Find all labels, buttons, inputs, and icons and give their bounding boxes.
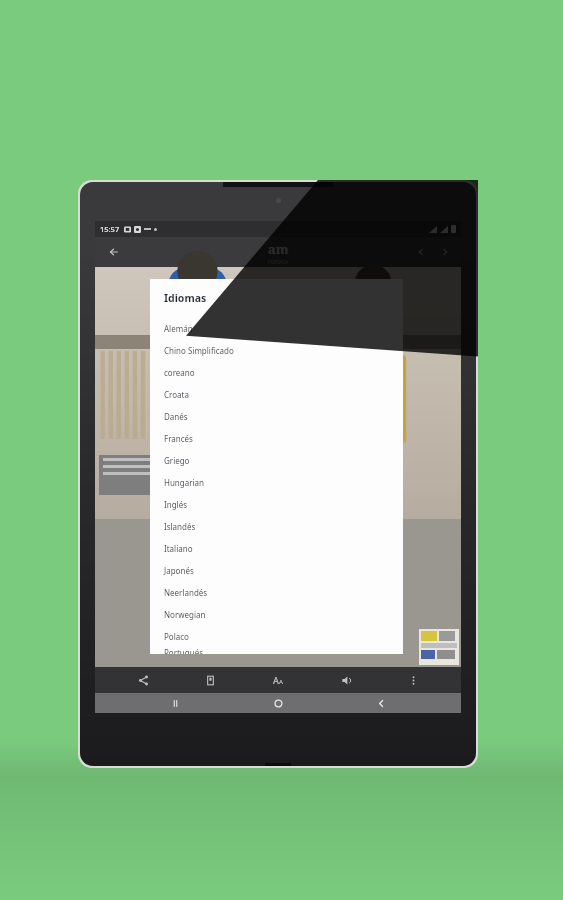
button[interactable]: Neerlandés xyxy=(150,581,403,603)
staticText: Polaco xyxy=(164,631,189,642)
button[interactable]: Recientes xyxy=(152,693,198,713)
staticText: Hungarian xyxy=(164,477,205,488)
button[interactable]: Tamaño de texto xyxy=(258,667,298,693)
button[interactable]: Danés xyxy=(150,405,403,427)
button[interactable]: Croata xyxy=(150,383,403,405)
staticText: A xyxy=(279,678,283,686)
staticText: Inglés xyxy=(164,499,187,510)
button[interactable]: Atrás xyxy=(358,693,404,713)
button[interactable]: Chino Simplificado xyxy=(150,339,403,361)
staticText: Griego xyxy=(164,455,190,466)
button[interactable]: Guardar xyxy=(190,667,230,693)
staticText: Neerlandés xyxy=(164,587,208,598)
button[interactable]: Siguiente xyxy=(435,242,455,262)
button[interactable]: Compartir xyxy=(123,667,163,693)
staticText: Japonés xyxy=(164,565,194,576)
button[interactable]: Hungarian xyxy=(150,471,403,493)
button[interactable]: Portugués xyxy=(150,647,403,654)
button[interactable]: Francés xyxy=(150,427,403,449)
button[interactable]: Italiano xyxy=(150,537,403,559)
button[interactable]: Islandés xyxy=(150,515,403,537)
button[interactable]: Norwegian xyxy=(150,603,403,625)
staticText: 15:57 xyxy=(100,224,120,234)
button[interactable]: Griego xyxy=(150,449,403,471)
staticText: PORTADA xyxy=(268,259,289,265)
staticText: Chino Simplificado xyxy=(164,345,234,356)
button[interactable]: Atrás xyxy=(103,241,125,263)
button[interactable]: Alemán xyxy=(150,317,403,339)
staticText: Islandés xyxy=(164,521,196,532)
staticText: am xyxy=(268,240,289,258)
button[interactable]: coreano xyxy=(150,361,403,383)
staticText: Francés xyxy=(164,433,193,444)
button[interactable]: Japonés xyxy=(150,559,403,581)
staticText: A xyxy=(273,674,279,686)
button[interactable]: Inicio xyxy=(255,693,301,713)
staticText: Norwegian xyxy=(164,609,206,620)
staticText: Portugués xyxy=(164,647,204,654)
staticText: Croata xyxy=(164,389,189,400)
staticText: Alemán xyxy=(164,323,193,334)
button[interactable]: Más opciones xyxy=(393,667,433,693)
button[interactable]: Anterior xyxy=(411,242,431,262)
staticText: Italiano xyxy=(164,543,193,554)
staticText: Danés xyxy=(164,411,188,422)
button[interactable]: Leer en voz alta xyxy=(326,667,366,693)
button[interactable]: Inglés xyxy=(150,493,403,515)
staticText: coreano xyxy=(164,367,195,378)
staticText: Idiomas xyxy=(164,291,207,305)
button[interactable]: Polaco xyxy=(150,625,403,647)
button[interactable]: am xyxy=(268,240,289,265)
